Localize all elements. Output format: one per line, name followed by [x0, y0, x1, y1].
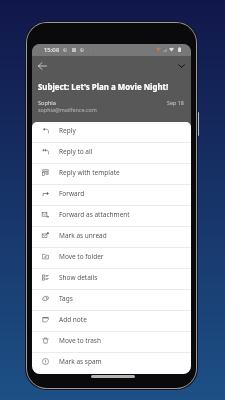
- staticText: Tags: [59, 294, 73, 303]
- staticText: Mark as unread: [59, 231, 107, 240]
- staticText: Move to trash: [59, 336, 102, 345]
- button[interactable]: Move to trash: [32, 332, 191, 353]
- staticText: Reply with template: [59, 168, 120, 177]
- button[interactable]: Move to folder: [32, 248, 191, 269]
- button[interactable]: Reply: [32, 122, 191, 143]
- button[interactable]: Add note: [32, 311, 191, 332]
- staticText: Forward: [59, 189, 85, 198]
- button[interactable]: Tags: [32, 290, 191, 311]
- staticText: Sophia: [38, 99, 56, 107]
- staticText: Mark as spam: [59, 357, 102, 366]
- staticText: sophia@mailfence.com: [38, 106, 97, 113]
- button[interactable]: Forward as attachment: [32, 206, 191, 227]
- button[interactable]: Mark as unread: [32, 227, 191, 248]
- button[interactable]: Forward: [32, 185, 191, 206]
- button[interactable]: Mark as spam: [32, 353, 191, 374]
- staticText: Show details: [59, 273, 98, 282]
- button[interactable]: Show details: [32, 269, 191, 290]
- staticText: Sep 18: [167, 99, 184, 106]
- button[interactable]: Reply with template: [32, 164, 191, 185]
- staticText: Reply to all: [59, 147, 93, 156]
- staticText: 15:08: [44, 46, 60, 54]
- staticText: Subject: Let's Plan a Movie Night!: [38, 82, 169, 93]
- button[interactable]: Reply to all: [32, 143, 191, 164]
- staticText: Move to folder: [59, 252, 104, 261]
- button[interactable]: Back: [35, 58, 50, 73]
- staticText: Forward as attachment: [59, 210, 130, 219]
- staticText: Add note: [59, 315, 87, 324]
- staticText: Reply: [59, 126, 76, 135]
- button[interactable]: Expand header: [174, 59, 188, 73]
